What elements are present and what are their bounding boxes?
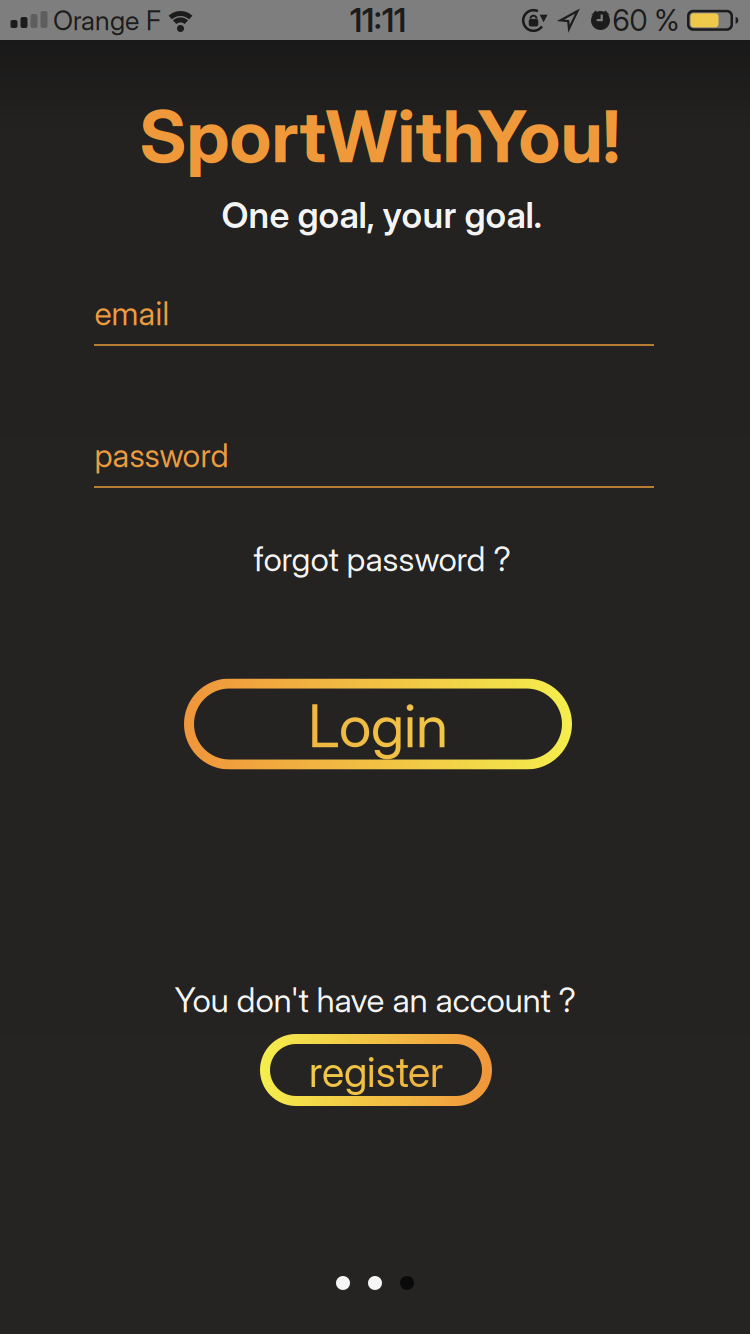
button[interactable]: password [94,434,654,506]
button[interactable] [184,678,572,769]
staticText: SportWithYou! [139,93,620,178]
staticText: password [94,437,228,474]
staticText: email [94,295,169,332]
button[interactable]: Page 3 of 3 [336,1276,414,1290]
staticText: forgot password ? [253,539,510,579]
button[interactable]: email [94,292,654,364]
staticText: Orange F [53,5,161,36]
staticText: One goal, your goal. [221,194,542,236]
button[interactable]: forgot password ? [253,539,510,579]
button[interactable] [260,1034,492,1106]
staticText: 11:11 [350,1,406,39]
staticText: You don't have an account ? [174,980,575,1020]
staticText: 60 % [612,3,679,38]
